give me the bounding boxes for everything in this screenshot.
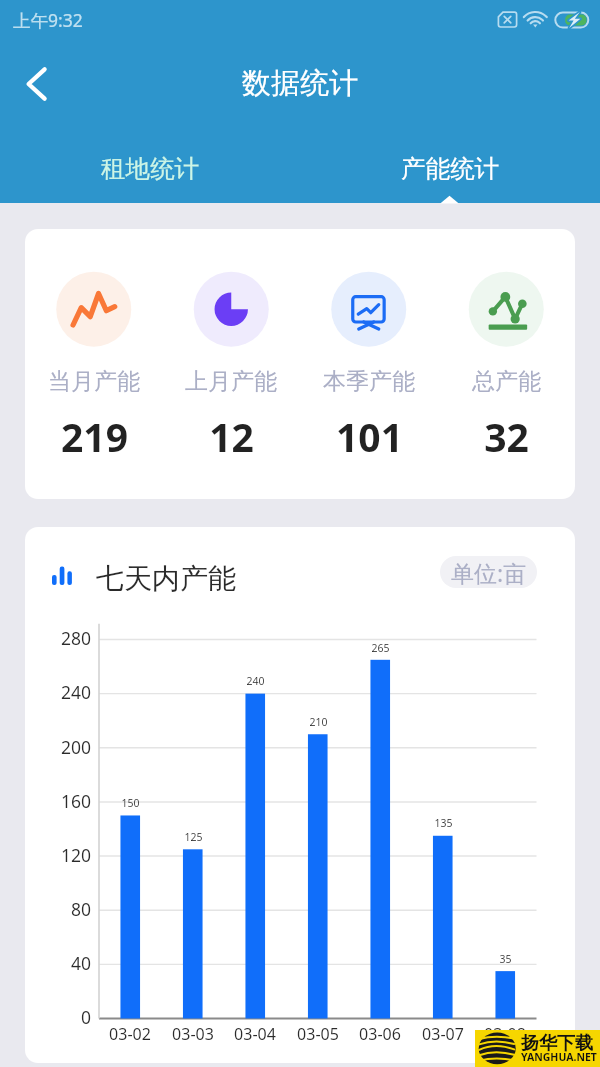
staticText: 32: [484, 410, 529, 463]
staticText: 12: [209, 410, 254, 463]
staticText: 35: [499, 952, 512, 966]
staticText: 产能统计: [401, 153, 499, 184]
staticText: 03-04: [234, 1023, 276, 1045]
button[interactable]: 租地统计: [0, 139, 300, 197]
staticText: 总产能: [472, 367, 541, 396]
staticText: 七天内产能: [96, 561, 236, 596]
staticText: 03-06: [359, 1023, 401, 1045]
staticText: 135: [434, 816, 453, 830]
staticText: 租地统计: [101, 153, 199, 184]
staticText: 265: [371, 641, 390, 655]
staticText: 本季产能: [323, 367, 415, 396]
staticText: YANGHUA.NET: [521, 1050, 597, 1064]
staticText: 80: [70, 897, 91, 921]
staticText: 150: [121, 796, 140, 810]
staticText: 240: [60, 680, 91, 704]
button[interactable]: 产能统计: [300, 139, 600, 197]
staticText: 40: [70, 951, 91, 975]
staticText: 单位:亩: [451, 557, 527, 588]
staticText: 240: [246, 674, 265, 688]
staticText: 03-05: [297, 1023, 339, 1045]
staticText: 0: [80, 1005, 91, 1029]
staticText: 03-08: [484, 1023, 526, 1045]
staticText: 101: [336, 410, 403, 463]
staticText: 上午9:32: [13, 8, 83, 32]
staticText: 219: [61, 410, 128, 463]
button[interactable]: 返回: [11, 59, 63, 109]
staticText: 03-07: [422, 1023, 464, 1045]
staticText: 200: [60, 735, 91, 759]
staticText: 03-03: [172, 1023, 214, 1045]
staticText: 03-02: [109, 1023, 151, 1045]
staticText: 上月产能: [185, 367, 277, 396]
staticText: 数据统计: [242, 65, 358, 102]
button[interactable]: 单位:亩: [440, 556, 537, 588]
staticText: 210: [309, 715, 328, 729]
staticText: 125: [184, 830, 203, 844]
staticText: 160: [60, 789, 91, 813]
staticText: 120: [60, 843, 91, 867]
staticText: 扬华下载: [521, 1032, 593, 1055]
staticText: 280: [60, 626, 91, 650]
staticText: 当月产能: [48, 367, 140, 396]
